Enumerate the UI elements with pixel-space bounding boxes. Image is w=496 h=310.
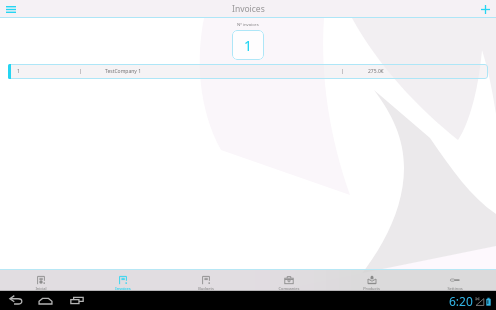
button[interactable]: Inicial <box>0 270 82 290</box>
button[interactable] <box>8 64 488 79</box>
staticText: Invoices <box>115 286 131 290</box>
staticText: Settings <box>447 286 463 290</box>
button[interactable]: 1 <box>232 30 264 60</box>
button[interactable]: Settings <box>413 270 496 290</box>
staticText: | <box>79 68 82 75</box>
staticText: Products <box>363 286 380 290</box>
button[interactable]: Invoices <box>82 270 164 290</box>
staticText: 1 <box>244 36 253 55</box>
staticText: TestCompany 1 <box>105 68 141 75</box>
staticText: Invoices <box>232 3 265 15</box>
staticText: Inicial <box>35 286 47 290</box>
staticText: 275.0€ <box>368 68 384 75</box>
button[interactable]: Recent apps <box>61 291 92 310</box>
button[interactable]: Home <box>30 291 61 310</box>
staticText: 1 <box>17 68 20 75</box>
button[interactable]: Add invoice <box>478 2 492 16</box>
staticText: | <box>341 68 344 75</box>
button[interactable]: Companies <box>247 270 330 290</box>
button[interactable]: Back <box>1 291 30 310</box>
button[interactable]: Menu <box>4 2 18 16</box>
button[interactable]: Budgets <box>164 270 247 290</box>
staticText: Budgets <box>198 286 214 290</box>
button[interactable]: Products <box>330 270 413 290</box>
staticText: Companies <box>278 286 300 290</box>
staticText: Nº invoices <box>237 22 259 28</box>
staticText: 6:20 <box>449 293 473 309</box>
